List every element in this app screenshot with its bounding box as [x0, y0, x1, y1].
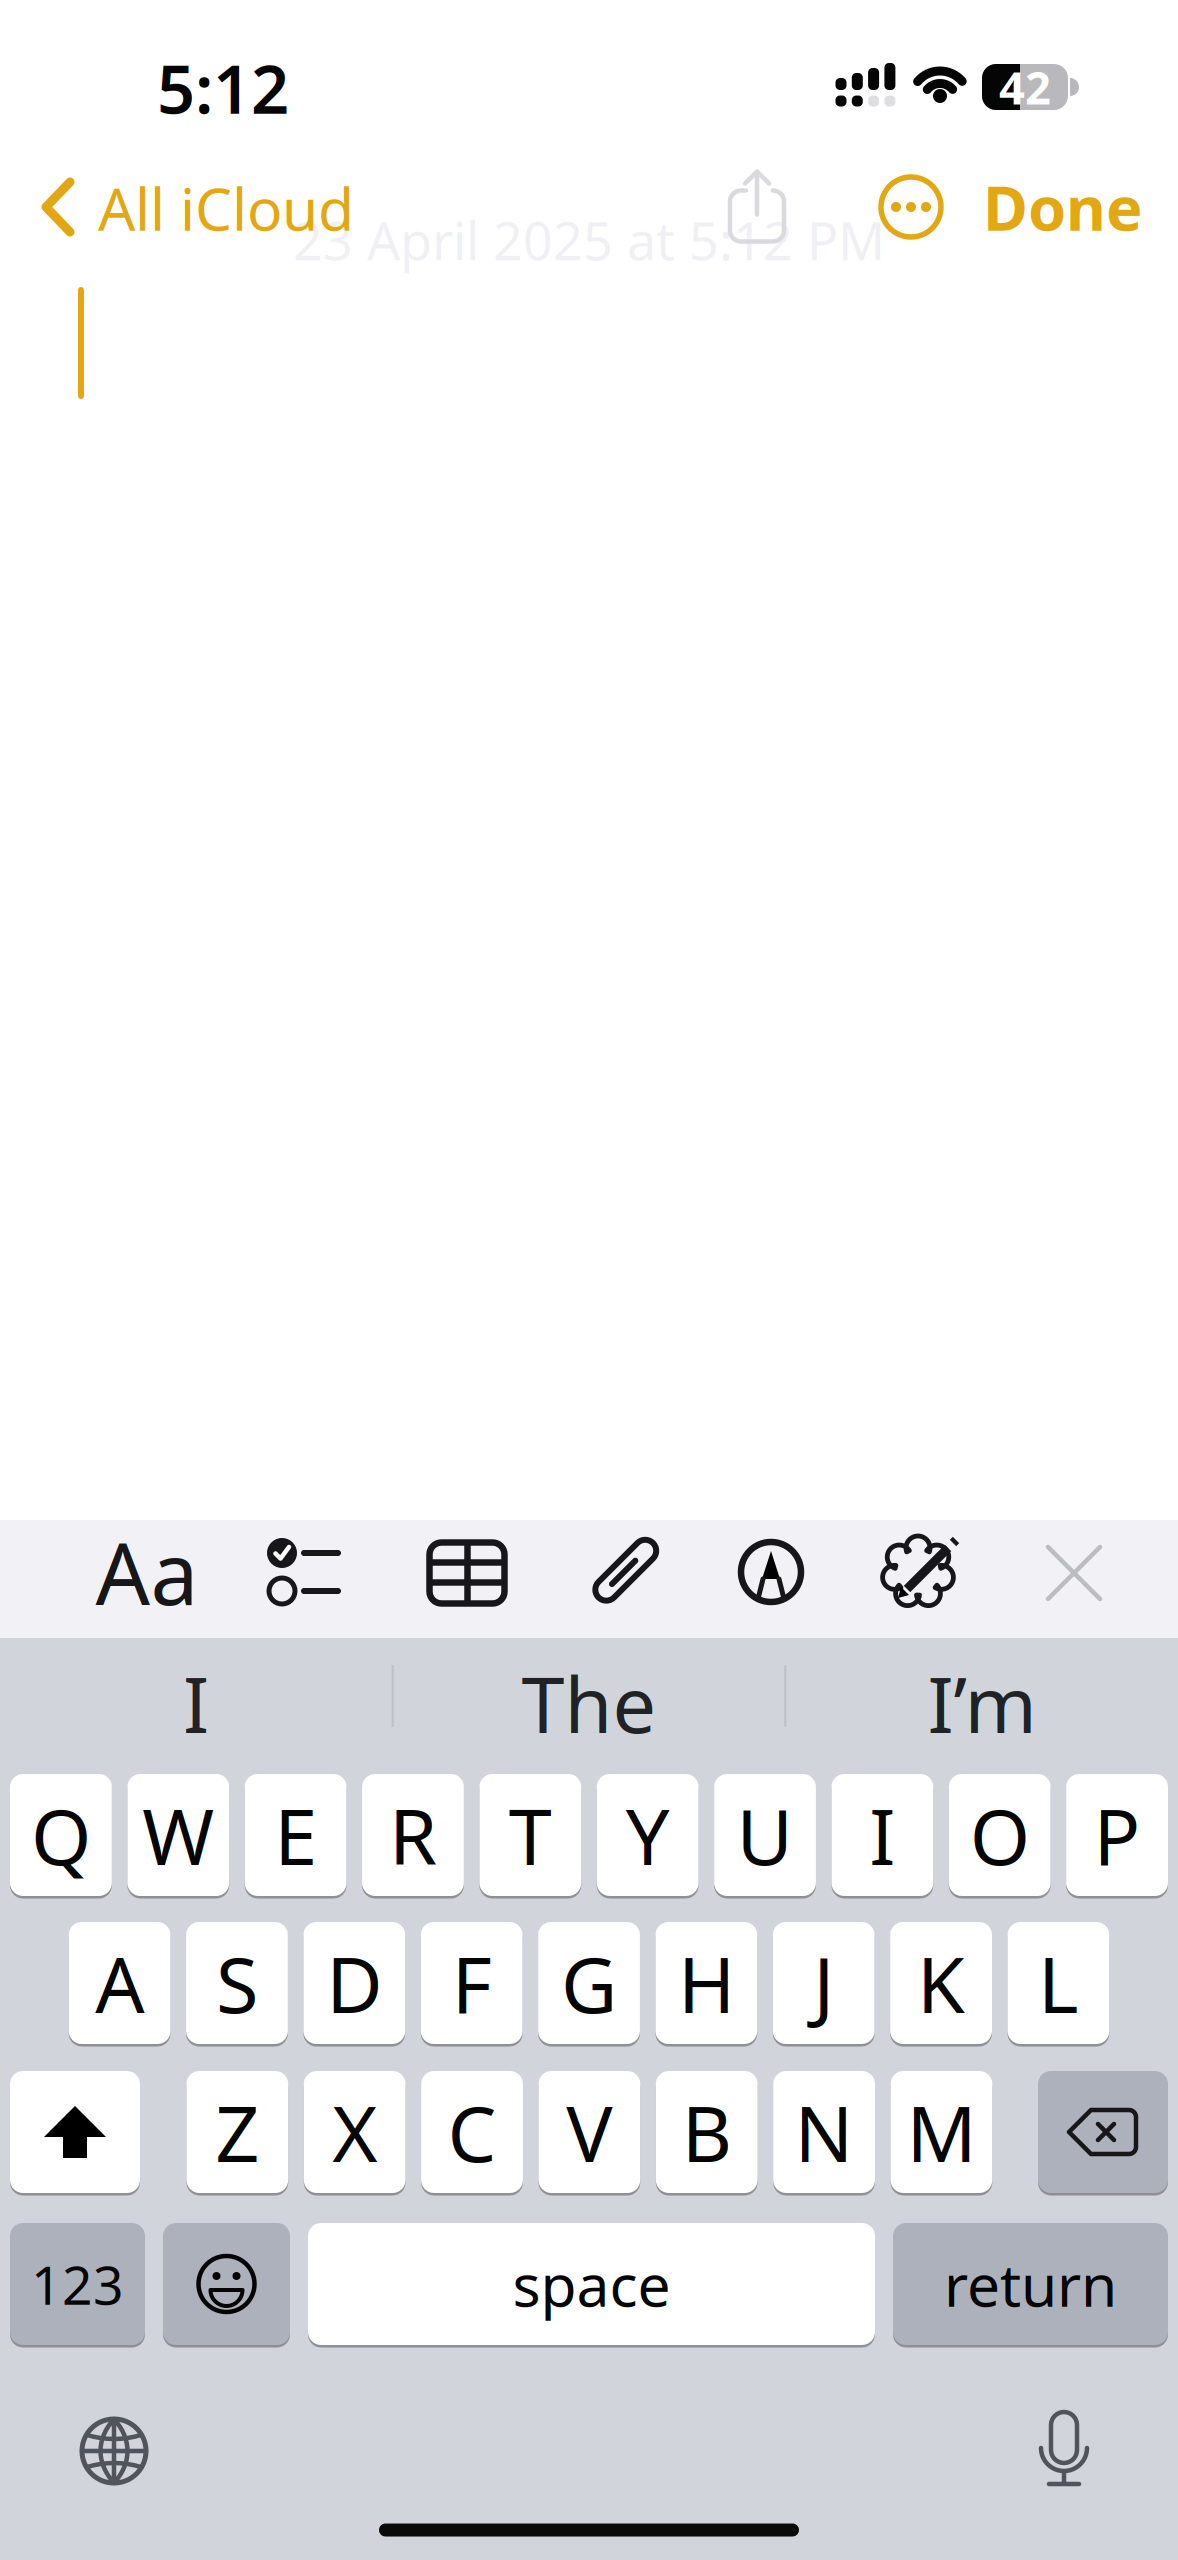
staticText: Z	[215, 2081, 259, 2183]
button[interactable]: Format	[87, 1517, 207, 1627]
staticText: return	[944, 2245, 1117, 2323]
staticText: L	[1038, 1932, 1079, 2034]
button[interactable]: B	[656, 2069, 758, 2194]
button[interactable]: A	[69, 1920, 170, 2045]
button[interactable]: Dictate	[1009, 2394, 1119, 2504]
button[interactable]: E	[245, 1772, 346, 1897]
staticText: Q	[31, 1784, 91, 1886]
staticText: A	[95, 1932, 144, 2034]
button[interactable]: Numbers	[10, 2221, 145, 2346]
button[interactable]: L	[1007, 1920, 1109, 2045]
staticText: W	[142, 1784, 214, 1886]
button[interactable]: Done	[953, 175, 1173, 239]
button[interactable]: Share	[730, 170, 784, 241]
button[interactable]: O	[949, 1772, 1051, 1897]
staticText: C	[447, 2081, 496, 2183]
button[interactable]: More	[878, 174, 944, 240]
staticText: S	[216, 1932, 258, 2034]
button[interactable]: Q	[10, 1772, 112, 1897]
button[interactable]: Markup	[711, 1517, 831, 1627]
button[interactable]: Dismiss keyboard	[1019, 1518, 1129, 1628]
button[interactable]: space	[308, 2221, 875, 2346]
staticText: 5:12	[157, 44, 289, 132]
button[interactable]: Table	[407, 1518, 527, 1628]
button[interactable]: M	[890, 2069, 992, 2194]
staticText: T	[509, 1784, 552, 1886]
button[interactable]: U	[714, 1772, 816, 1897]
staticText: The	[521, 1652, 656, 1754]
staticText: P	[1094, 1784, 1141, 1886]
button[interactable]: T	[479, 1772, 581, 1897]
staticText: space	[512, 2245, 670, 2323]
button[interactable]: Y	[597, 1772, 699, 1897]
button[interactable]: Delete	[1038, 2069, 1168, 2194]
staticText: I	[869, 1784, 895, 1886]
button[interactable]: I	[6, 1640, 386, 1766]
button[interactable]: Next keyboard	[59, 2396, 169, 2506]
staticText: 23 April 2025 at 5:12 PM	[293, 205, 885, 275]
button[interactable]: return	[893, 2221, 1168, 2346]
staticText: M	[906, 2081, 976, 2183]
button[interactable]: G	[538, 1920, 640, 2045]
button[interactable]: K	[890, 1920, 992, 2045]
button[interactable]: C	[421, 2069, 523, 2194]
staticText: I	[183, 1652, 209, 1754]
button[interactable]: I’m	[792, 1640, 1172, 1766]
button[interactable]: F	[421, 1920, 522, 2045]
staticText: 42	[999, 57, 1051, 117]
button[interactable]: X	[304, 2069, 406, 2194]
button[interactable]: Writing Tools	[862, 1516, 982, 1626]
staticText: I’m	[927, 1652, 1036, 1754]
button[interactable]: I	[831, 1772, 933, 1897]
button[interactable]: Emoji	[163, 2221, 290, 2346]
button[interactable]: W	[127, 1772, 229, 1897]
staticText: O	[970, 1784, 1030, 1886]
button[interactable]: H	[655, 1920, 757, 2045]
button[interactable]: N	[773, 2069, 875, 2194]
staticText: 123	[31, 2249, 124, 2319]
button[interactable]: V	[538, 2069, 640, 2194]
button[interactable]: R	[362, 1772, 464, 1897]
button[interactable]: Z	[186, 2069, 288, 2194]
button[interactable]: All iCloud	[44, 176, 374, 240]
staticText: E	[274, 1784, 317, 1886]
staticText: R	[389, 1784, 437, 1886]
staticText: All iCloud	[98, 169, 354, 247]
button[interactable]: J	[773, 1920, 875, 2045]
staticText: D	[326, 1932, 382, 2034]
staticText: U	[736, 1784, 793, 1886]
staticText: Aa	[95, 1515, 198, 1629]
staticText: N	[795, 2081, 854, 2183]
staticText: X	[332, 2081, 377, 2183]
button[interactable]: P	[1066, 1772, 1168, 1897]
staticText: H	[678, 1932, 735, 2034]
staticText: V	[566, 2081, 612, 2183]
button[interactable]: Attach	[564, 1517, 684, 1627]
staticText: G	[561, 1932, 617, 2034]
staticText: B	[682, 2081, 732, 2183]
button[interactable]: S	[186, 1920, 288, 2045]
button[interactable]: D	[303, 1920, 405, 2045]
staticText: Y	[626, 1784, 670, 1886]
staticText: F	[452, 1932, 492, 2034]
staticText: K	[917, 1932, 965, 2034]
button[interactable]: Checklist	[243, 1517, 363, 1627]
staticText: Done	[983, 166, 1143, 248]
button[interactable]: The	[399, 1640, 779, 1766]
button[interactable]: Shift	[10, 2069, 140, 2194]
staticText: J	[813, 1932, 834, 2034]
